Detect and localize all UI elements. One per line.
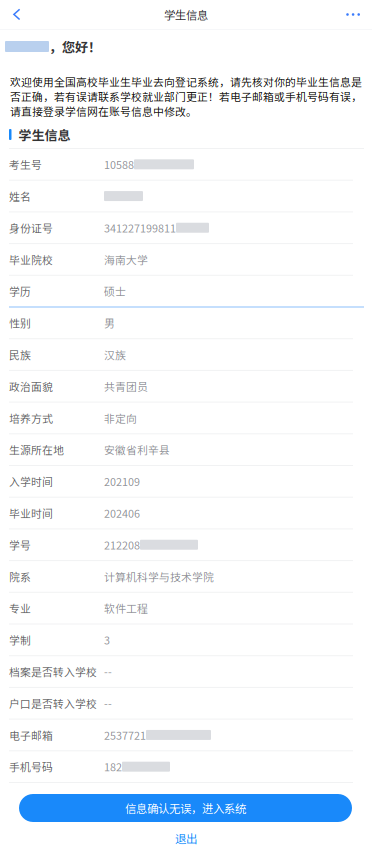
- staticText: ，您好！: [49, 37, 101, 56]
- staticText: 2537721: [104, 727, 146, 743]
- button[interactable]: 信息确认无误，进入系统: [19, 794, 352, 822]
- staticText: 身份证号: [9, 220, 53, 235]
- staticText: 电子邮箱: [9, 727, 53, 743]
- staticText: 专业: [9, 600, 31, 616]
- staticText: 软件工程: [104, 600, 148, 616]
- staticText: 学制: [9, 632, 31, 648]
- staticText: 考生号: [9, 156, 42, 172]
- staticText: 档案是否转入学校: [9, 664, 97, 679]
- staticText: 计算机科学与技术学院: [104, 569, 214, 584]
- staticText: 男: [104, 315, 115, 331]
- staticText: 安徽省利辛县: [104, 442, 170, 457]
- staticText: 退出: [175, 830, 197, 847]
- staticText: 汉族: [104, 347, 126, 362]
- staticText: 学号: [9, 537, 31, 552]
- staticText: 毕业时间: [9, 505, 53, 521]
- staticText: 学历: [9, 283, 31, 299]
- staticText: 3: [104, 632, 110, 648]
- staticText: 姓名: [9, 188, 31, 204]
- staticText: --: [104, 695, 112, 711]
- staticText: --: [104, 664, 112, 679]
- button[interactable]: 退出: [170, 825, 202, 852]
- button[interactable]: More options: [334, 0, 372, 29]
- staticText: 政治面貌: [9, 378, 53, 394]
- staticText: 硕士: [104, 283, 126, 299]
- staticText: 院系: [9, 569, 31, 584]
- staticText: 毕业院校: [9, 252, 53, 267]
- staticText: 非定向: [104, 410, 137, 426]
- staticText: 户口是否转入学校: [9, 695, 97, 711]
- staticText: 学生信息: [18, 125, 70, 144]
- staticText: 共青团员: [104, 378, 148, 394]
- staticText: 性别: [9, 315, 31, 331]
- staticText: 海南大学: [104, 252, 148, 267]
- staticText: 学生信息: [164, 6, 208, 23]
- staticText: 生源所在地: [9, 442, 64, 457]
- button[interactable]: Back: [0, 0, 32, 29]
- staticText: 182: [104, 759, 122, 774]
- staticText: 入学时间: [9, 473, 53, 489]
- staticText: 欢迎使用全国高校毕业生毕业去向登记系统，请先核对你的毕业生信息是否正确，若有误请…: [10, 74, 362, 119]
- staticText: 培养方式: [9, 410, 53, 426]
- staticText: 341227199811: [104, 220, 176, 235]
- staticText: 手机号码: [9, 759, 53, 774]
- staticText: 202109: [104, 473, 140, 489]
- staticText: 10588: [104, 156, 134, 172]
- staticText: 212208: [104, 537, 140, 552]
- staticText: 信息确认无误，进入系统: [125, 800, 246, 816]
- staticText: 民族: [9, 347, 31, 362]
- staticText: 202406: [104, 505, 140, 521]
